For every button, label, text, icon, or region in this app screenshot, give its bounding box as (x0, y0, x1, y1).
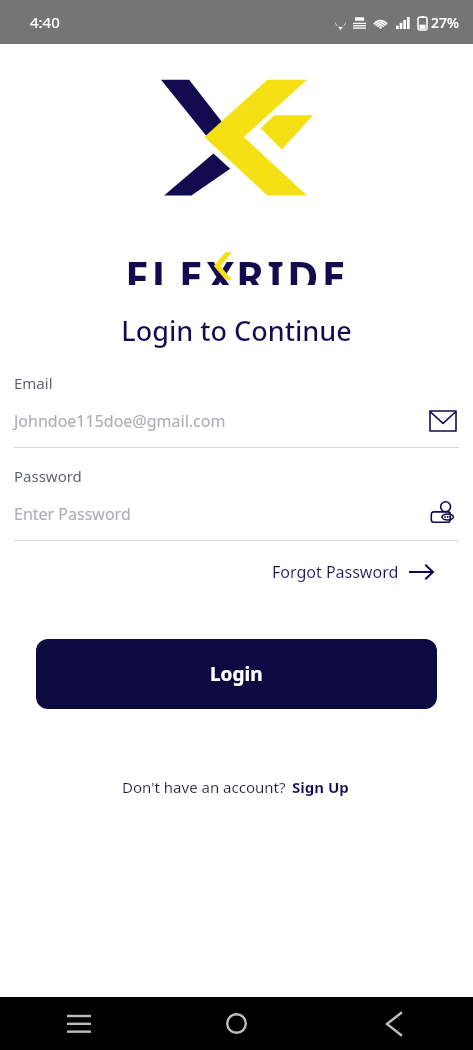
staticText: Forgot Password (272, 561, 399, 583)
button[interactable]: Recent apps (0, 997, 157, 1050)
button[interactable]: Forgot Password (268, 555, 437, 589)
button[interactable]: Enter Password (14, 498, 459, 530)
button[interactable]: Email (427, 405, 459, 437)
button[interactable]: Back (315, 997, 473, 1050)
staticText: Login to Continue (0, 312, 473, 349)
button[interactable]: Johndoe115doe@gmail.com (14, 405, 459, 437)
button[interactable]: Login (36, 639, 437, 709)
staticText: Don't have an account? (122, 777, 290, 797)
staticText: Johndoe115doe@gmail.com (14, 410, 427, 432)
staticText: Login (210, 661, 263, 687)
staticText: Sign Up (292, 777, 349, 797)
staticText: 4:40 (30, 12, 60, 32)
staticText: 27% (431, 13, 459, 32)
button[interactable]: Show password (427, 498, 459, 530)
staticText: RIDE (236, 247, 349, 285)
staticText: FLE (125, 247, 206, 285)
staticText: Enter Password (14, 503, 427, 525)
staticText: Password (14, 466, 82, 486)
staticText: Email (14, 373, 53, 393)
button[interactable]: Home (157, 997, 315, 1050)
button[interactable]: Sign Up (290, 773, 351, 801)
staticText: X (206, 247, 236, 285)
